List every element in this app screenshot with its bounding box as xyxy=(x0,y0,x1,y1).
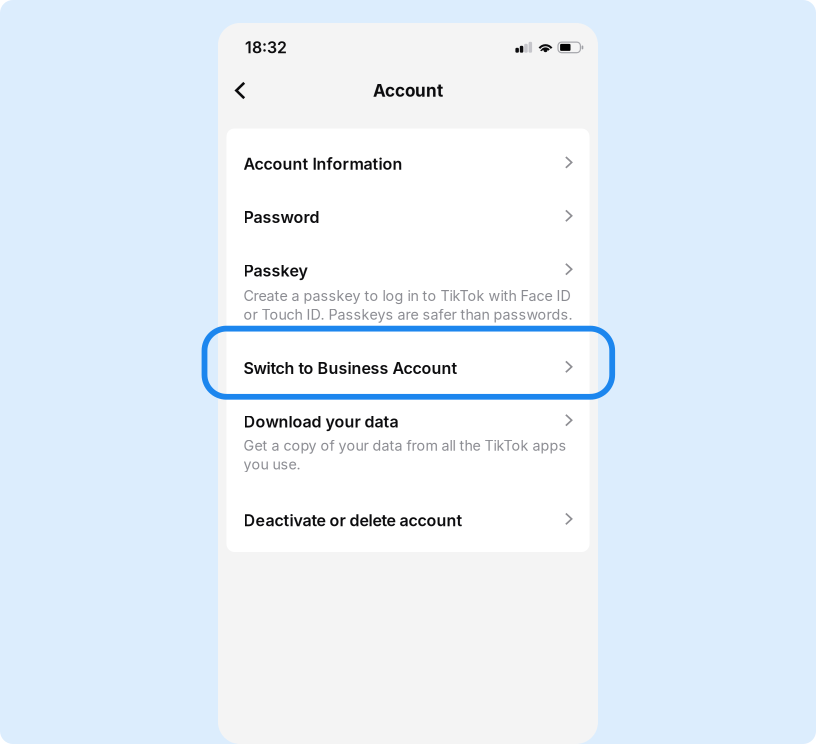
button[interactable]: Back xyxy=(218,70,259,110)
button[interactable]: Switch to Business Account xyxy=(226,342,589,395)
button[interactable]: Passkey xyxy=(226,244,589,297)
staticText: Passkey xyxy=(243,261,307,280)
staticText: Switch to Business Account xyxy=(243,359,457,378)
button[interactable]: Account Information xyxy=(226,137,589,191)
staticText: Account Information xyxy=(243,154,402,174)
button[interactable]: Download your data xyxy=(226,395,589,448)
staticText: Deactivate or delete account xyxy=(243,511,462,530)
staticText: Password xyxy=(243,208,319,227)
staticText: Download your data xyxy=(243,412,398,431)
staticText: Create a passkey to log in to TikTok wit… xyxy=(243,287,570,305)
staticText: Get a copy of your data from all the Tik… xyxy=(243,437,566,454)
button[interactable]: Deactivate or delete account xyxy=(226,494,589,547)
staticText: 18:32 xyxy=(245,38,287,57)
staticText: Account xyxy=(373,80,443,101)
button[interactable]: Password xyxy=(226,191,589,244)
staticText: or Touch ID. Passkeys are safer than pas… xyxy=(243,306,572,323)
staticText: you use. xyxy=(243,456,300,473)
